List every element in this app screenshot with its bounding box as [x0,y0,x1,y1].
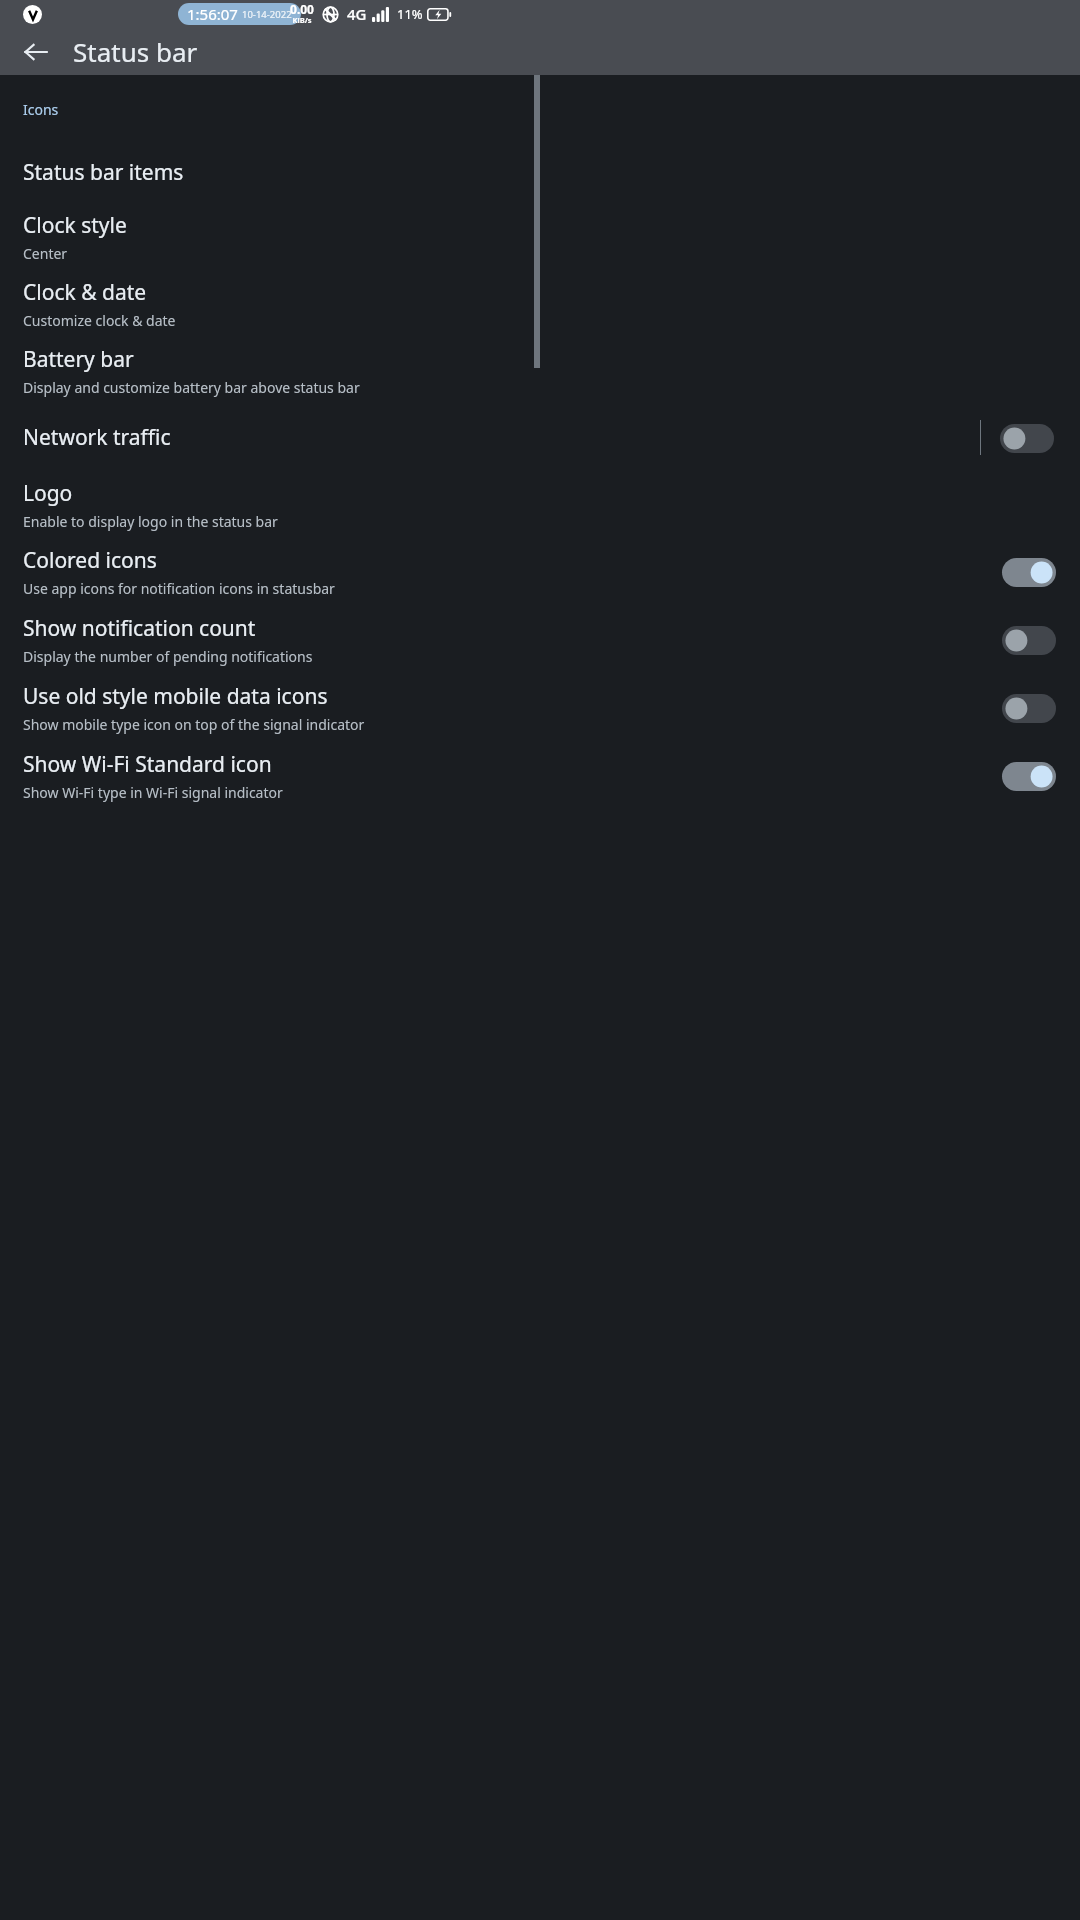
staticText: Customize clock & date [23,311,176,330]
staticText: Icons [23,100,59,119]
button[interactable]: Clock style [0,203,1080,270]
staticText: Show notification count [23,614,256,643]
staticText: Logo [23,479,73,508]
staticText: KiB/s [292,15,312,25]
button[interactable]: Battery bar [0,337,1080,404]
button[interactable]: Use old style mobile data icons [0,674,1080,742]
staticText: Enable to display logo in the status bar [23,512,278,531]
staticText: Show mobile type icon on top of the sign… [23,715,365,734]
button[interactable]: Show Wi-Fi Standard icon [0,742,1080,810]
button[interactable]: Network traffic toggle [999,421,1055,455]
button[interactable]: Colored icons toggle [1001,555,1057,589]
button[interactable]: Show notification count toggle [1001,623,1057,657]
button[interactable]: Logo [0,471,1080,538]
staticText: Use app icons for notification icons in … [23,579,335,598]
staticText: Display the number of pending notificati… [23,647,313,666]
staticText: 11% [397,5,423,23]
staticText: Network traffic [23,423,171,452]
staticText: Clock & date [23,278,147,307]
button[interactable]: Colored icons [0,538,1080,606]
button[interactable]: Status bar items [0,141,1080,203]
staticText: Use old style mobile data icons [23,682,328,711]
staticText: Center [23,244,68,263]
staticText: Clock style [23,211,127,240]
staticText: 1:56:07 [187,4,238,24]
staticText: Colored icons [23,546,157,575]
button[interactable]: Show Wi-Fi Standard icon toggle [1001,759,1057,793]
button[interactable]: Back [14,30,58,74]
button[interactable]: Use old style mobile data icons toggle [1001,691,1057,725]
staticText: Status bar items [23,158,184,187]
button[interactable]: Show notification count [0,606,1080,674]
staticText: Display and customize battery bar above … [23,378,360,397]
staticText: Status bar [73,34,198,69]
button[interactable]: Clock & date [0,270,1080,337]
button[interactable]: Network traffic [0,404,1080,471]
staticText: Show Wi-Fi type in Wi-Fi signal indicato… [23,783,283,802]
staticText: 0.00 [290,1,314,17]
staticText: Show Wi-Fi Standard icon [23,750,272,779]
staticText: 4G [347,4,367,24]
staticText: Battery bar [23,345,134,374]
staticText: 10-14-2022 [242,8,292,21]
